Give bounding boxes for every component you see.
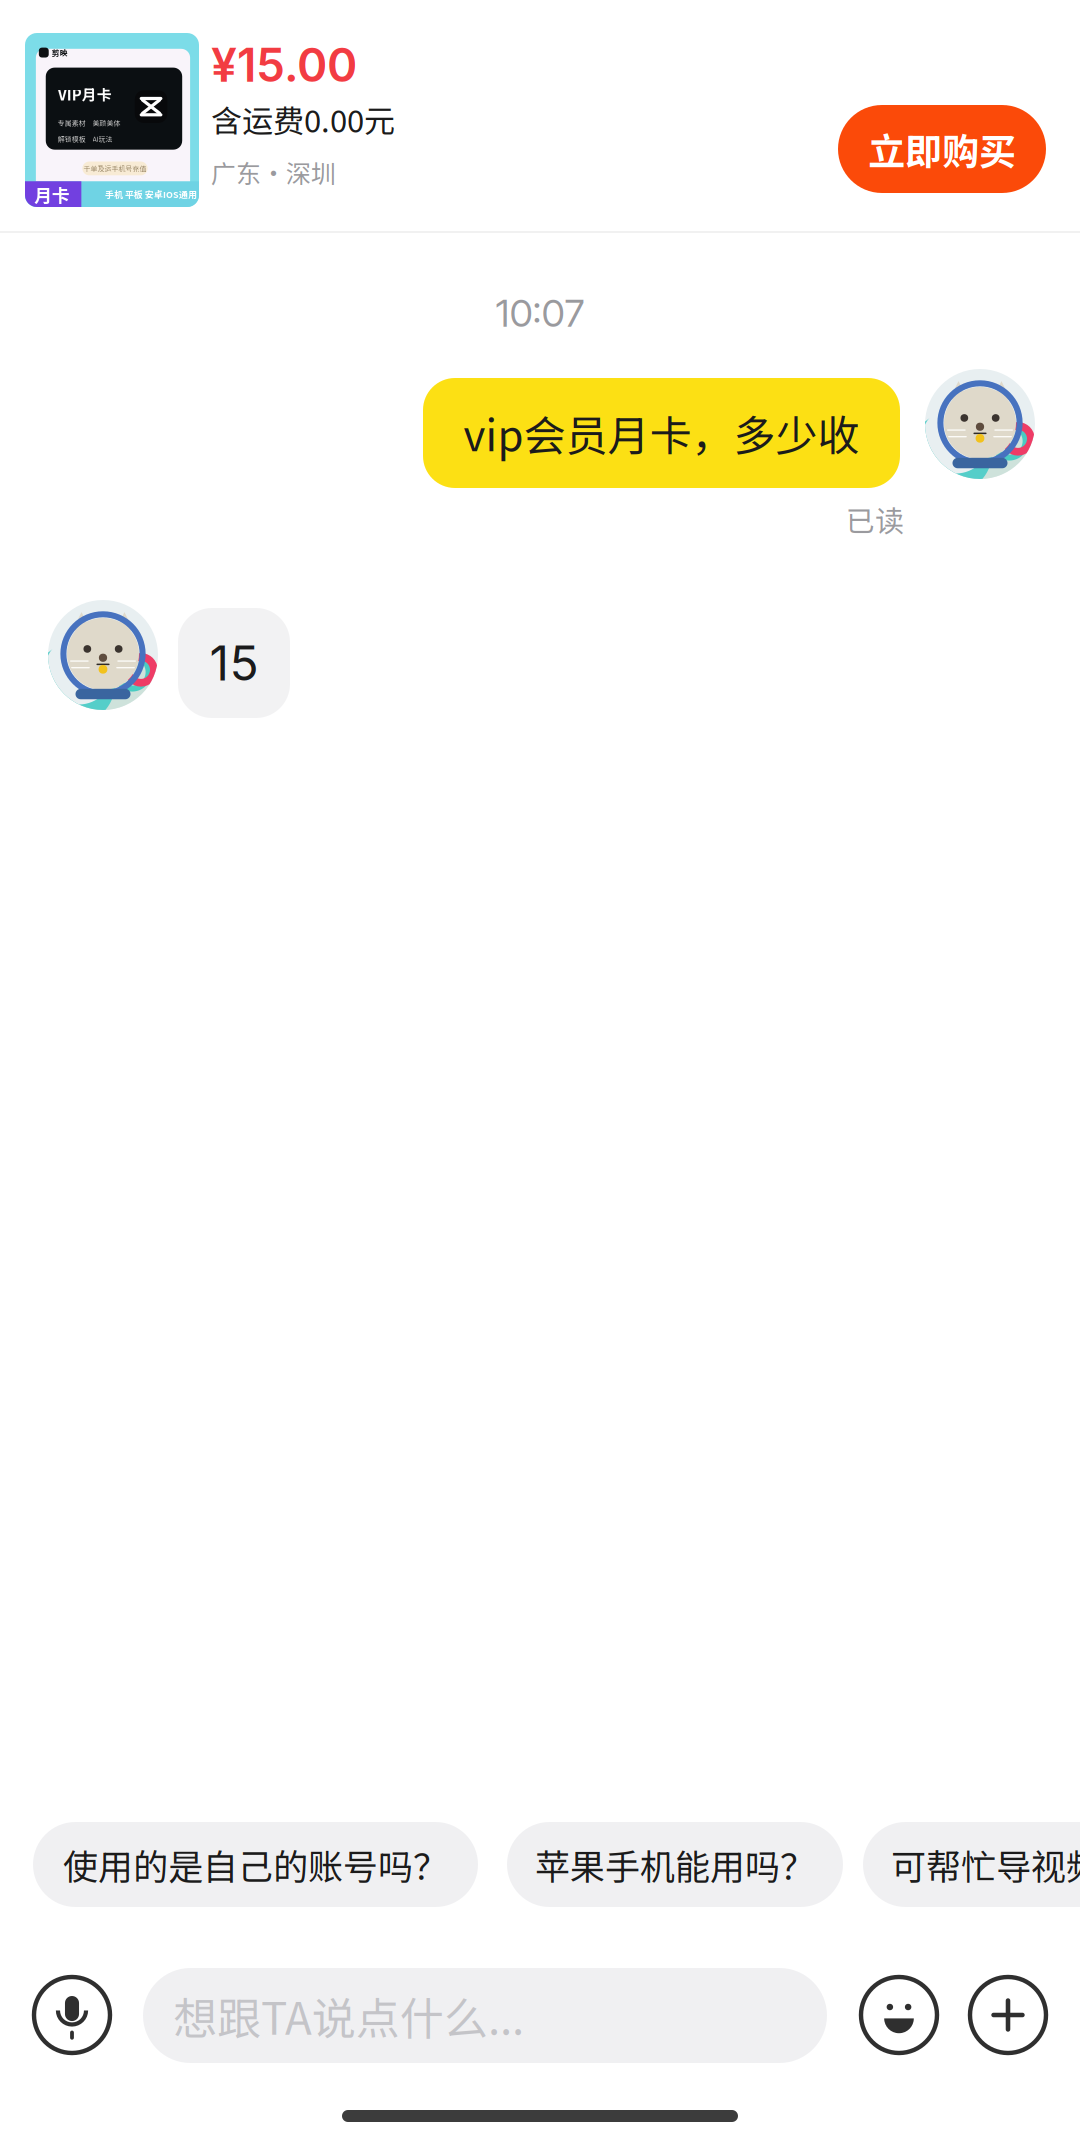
button[interactable]: 可帮忙导视频吗？: [863, 1822, 1080, 1907]
button[interactable]: 使用的是自己的账号吗？: [33, 1822, 478, 1907]
staticText: 立即购买: [868, 122, 1016, 176]
button[interactable]: More: [970, 1977, 1046, 2053]
staticText: 已读: [846, 498, 904, 540]
staticText: 10:07: [495, 290, 584, 336]
staticText: 剪映: [52, 47, 68, 58]
staticText: 千单及运手机号充值: [83, 163, 146, 173]
staticText: 手机 平板 安卓IOS通用: [105, 188, 197, 201]
staticText: 使用的是自己的账号吗？: [63, 1839, 448, 1890]
button[interactable]: Voice message: [34, 1977, 110, 2053]
button[interactable]: 想跟TA说点什么...: [143, 1968, 827, 2063]
button[interactable]: 立即购买: [838, 105, 1046, 193]
button[interactable]: 苹果手机能用吗？: [507, 1822, 843, 1907]
staticText: 月卡: [34, 181, 70, 207]
staticText: 想跟TA说点什么...: [173, 1984, 524, 2047]
staticText: 可帮忙导视频吗？: [891, 1839, 1080, 1890]
staticText: 广东·深圳: [211, 154, 336, 190]
staticText: VIP月卡: [58, 83, 112, 105]
staticText: vip会员月卡，多少收: [463, 403, 859, 463]
staticText: 美颜美体: [92, 118, 120, 128]
staticText: 15: [209, 634, 258, 692]
staticText: AI玩法: [92, 134, 112, 144]
staticText: 解锁模板: [58, 134, 86, 144]
button[interactable]: Emoji: [861, 1977, 937, 2053]
staticText: ¥15.00: [211, 37, 357, 93]
staticText: 专属素材: [58, 118, 86, 128]
staticText: 含运费0.00元: [211, 97, 395, 141]
button[interactable]: 剪映: [25, 33, 199, 207]
staticText: 苹果手机能用吗？: [535, 1839, 815, 1890]
